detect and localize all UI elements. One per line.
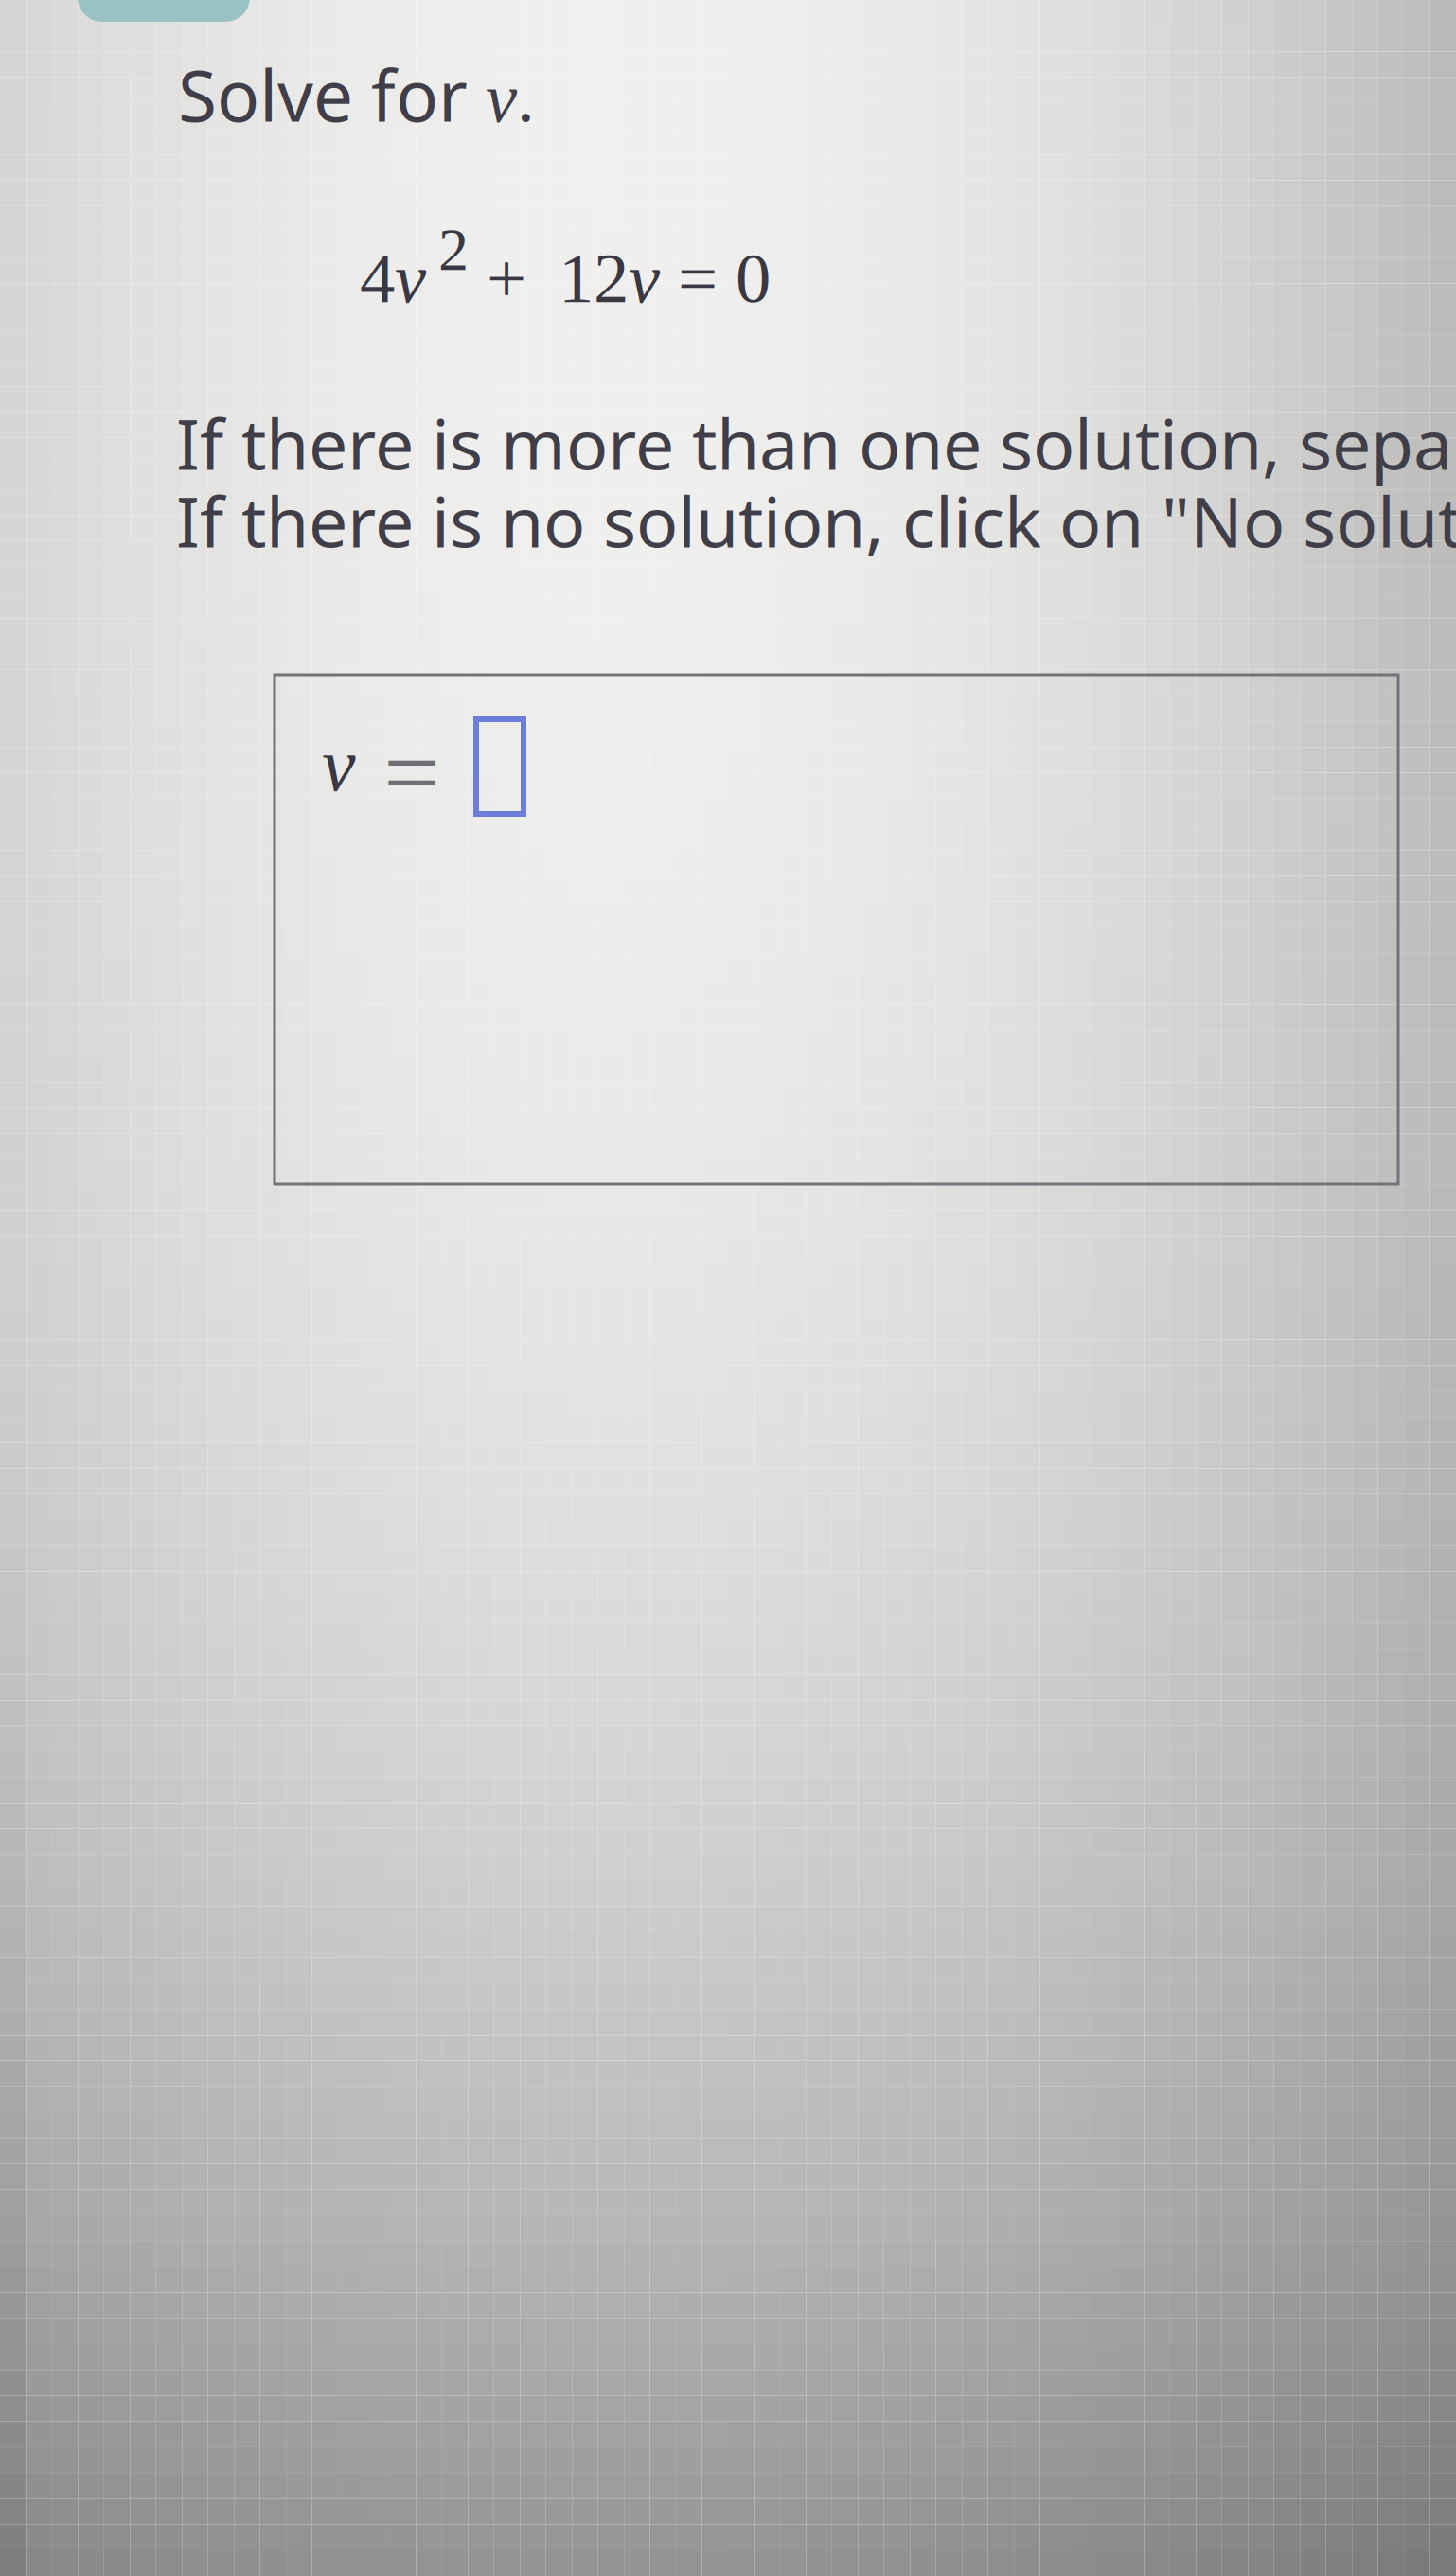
staticText: 4v 2 + 12v = 0: [360, 217, 771, 316]
button[interactable]: v equals, answer field: [275, 675, 559, 817]
staticText: =: [383, 716, 440, 828]
staticText: Solve for v.: [178, 47, 535, 141]
staticText: If there is more than one solution, sepa…: [176, 396, 1456, 490]
staticText: v: [322, 723, 356, 807]
staticText: If there is no solution, click on "No so…: [176, 473, 1456, 568]
